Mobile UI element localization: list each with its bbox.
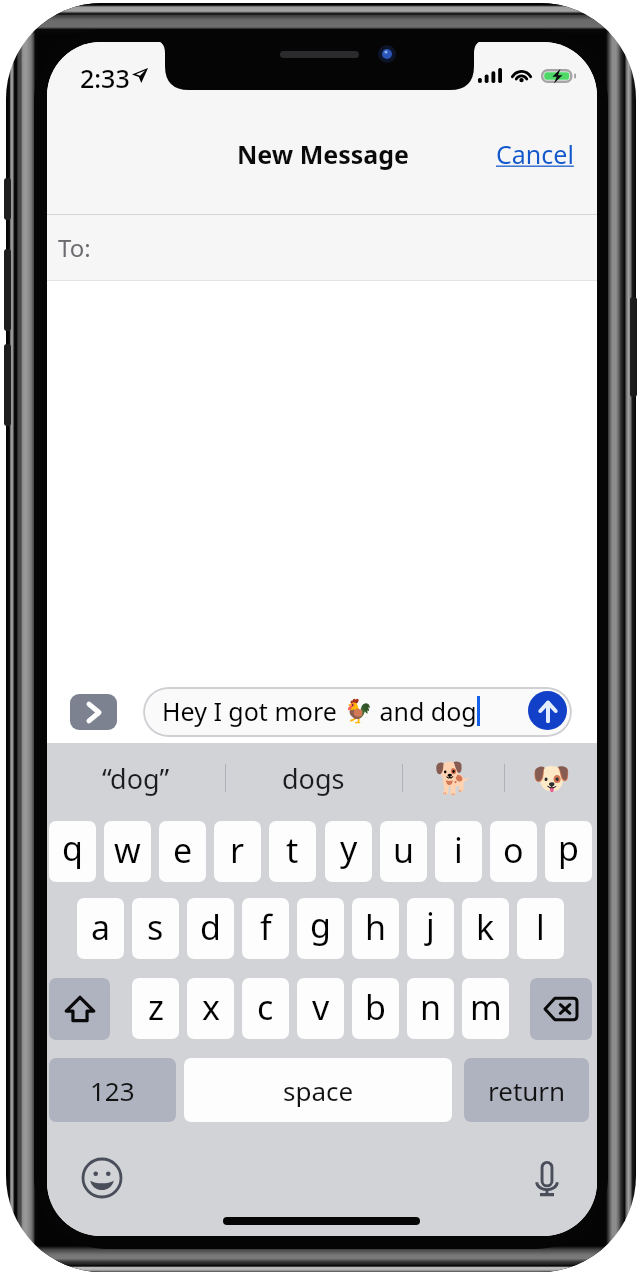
button[interactable]: o	[490, 821, 537, 882]
staticText: b	[365, 984, 386, 1030]
staticText: 2:33	[80, 61, 130, 95]
staticText: “dog”	[102, 760, 170, 797]
button[interactable]: p	[545, 821, 592, 882]
button[interactable]: g	[297, 898, 344, 959]
button[interactable]: space	[184, 1058, 452, 1122]
button[interactable]: n	[407, 978, 454, 1039]
button[interactable]: 🐶	[504, 743, 597, 813]
button[interactable]: Hey I got more	[143, 687, 572, 737]
staticText: Cancel	[496, 137, 574, 171]
staticText: Hey I got more	[162, 694, 344, 728]
staticText: r	[230, 827, 245, 873]
staticText: u	[393, 827, 415, 873]
button[interactable]: y	[325, 821, 372, 882]
button[interactable]: m	[462, 978, 509, 1039]
staticText: i	[454, 827, 463, 873]
button[interactable]: Backspace	[530, 978, 592, 1040]
staticText: dogs	[282, 760, 345, 797]
staticText: space	[283, 1073, 354, 1108]
button[interactable]: l	[517, 898, 564, 959]
staticText: p	[558, 825, 579, 871]
staticText: and dog	[373, 694, 477, 728]
button[interactable]: Dictation	[525, 1156, 569, 1200]
staticText: k	[476, 904, 495, 950]
button[interactable]: u	[380, 821, 427, 882]
button[interactable]: t	[269, 821, 316, 882]
button[interactable]: Shift	[49, 978, 110, 1040]
staticText: n	[420, 984, 442, 1030]
staticText: d	[200, 904, 221, 950]
button[interactable]: x	[187, 978, 234, 1039]
button[interactable]: c	[242, 978, 289, 1039]
button[interactable]: More apps	[70, 694, 117, 730]
staticText: 🐶	[532, 760, 571, 796]
staticText: j	[426, 902, 435, 948]
button[interactable]: “dog”	[47, 743, 225, 813]
staticText: z	[148, 984, 164, 1030]
staticText: g	[310, 902, 331, 948]
button[interactable]: i	[435, 821, 482, 882]
button[interactable]: Emoji keyboard	[80, 1156, 124, 1200]
staticText: x	[202, 984, 220, 1030]
button[interactable]: q	[49, 821, 96, 882]
staticText: l	[536, 904, 545, 950]
staticText: To:	[58, 231, 91, 264]
staticText: 🐓	[344, 698, 373, 725]
staticText: 🐕	[434, 760, 473, 796]
staticText: return	[488, 1073, 566, 1108]
button[interactable]: k	[462, 898, 509, 959]
button[interactable]: To:	[47, 215, 597, 280]
button[interactable]: v	[297, 978, 344, 1039]
staticText: w	[114, 827, 141, 873]
button[interactable]: e	[159, 821, 206, 882]
staticText: f	[260, 904, 272, 950]
button[interactable]: return	[464, 1058, 589, 1122]
button[interactable]: h	[352, 898, 399, 959]
staticText: 123	[90, 1073, 135, 1108]
button[interactable]: b	[352, 978, 399, 1039]
button[interactable]: 123	[49, 1058, 176, 1122]
button[interactable]: dogs	[225, 743, 402, 813]
staticText: y	[340, 825, 358, 871]
staticText: e	[173, 827, 193, 873]
button[interactable]: j	[407, 898, 454, 959]
staticText: New Message	[237, 137, 409, 171]
staticText: m	[470, 984, 502, 1030]
staticText: q	[62, 825, 83, 871]
staticText: o	[503, 827, 524, 873]
button[interactable]: 🐕	[402, 743, 504, 813]
staticText: a	[91, 904, 111, 950]
staticText: t	[286, 827, 299, 873]
button[interactable]: Cancel	[474, 132, 597, 182]
button[interactable]: a	[77, 898, 124, 959]
button[interactable]: d	[187, 898, 234, 959]
staticText: s	[147, 904, 164, 950]
button[interactable]: s	[132, 898, 179, 959]
staticText: c	[257, 984, 274, 1030]
staticText: h	[365, 904, 387, 950]
button[interactable]: r	[214, 821, 261, 882]
button[interactable]: Send	[528, 691, 567, 730]
button[interactable]: z	[132, 978, 179, 1039]
button[interactable]: f	[242, 898, 289, 959]
button[interactable]: w	[104, 821, 151, 882]
staticText: v	[312, 984, 330, 1030]
